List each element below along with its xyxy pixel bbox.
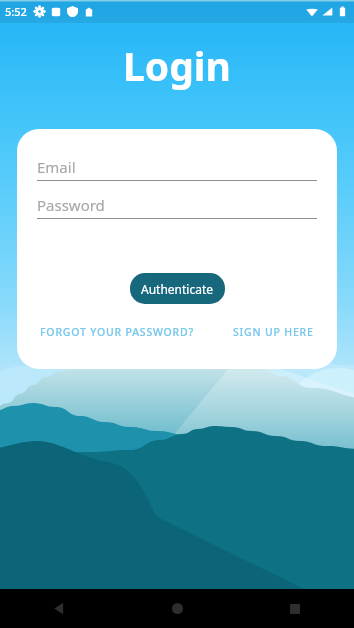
button[interactable]: Email (37, 157, 317, 181)
staticText: Login (123, 39, 231, 92)
button[interactable]: Authenticate (130, 273, 225, 304)
staticText: Password (37, 195, 105, 215)
button[interactable]: Back (0, 589, 118, 628)
button[interactable]: Password (37, 195, 317, 219)
staticText: Authenticate (141, 281, 214, 297)
button[interactable]: SIGN UP HERE (233, 325, 314, 339)
staticText: Email (37, 157, 76, 177)
staticText: FORGOT YOUR PASSWORD? (40, 325, 194, 339)
staticText: 5:52 (5, 4, 27, 19)
button[interactable]: FORGOT YOUR PASSWORD? (40, 325, 194, 339)
button[interactable]: Home (118, 589, 236, 628)
button[interactable]: Recent apps (236, 589, 354, 628)
staticText: SIGN UP HERE (233, 325, 314, 339)
